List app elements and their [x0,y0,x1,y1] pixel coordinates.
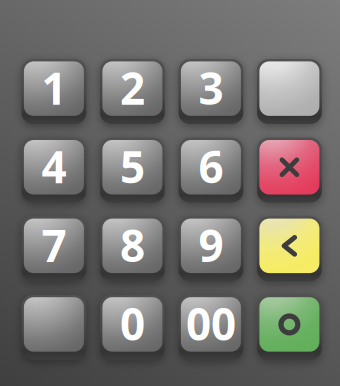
button[interactable]: 5 [100,138,165,203]
staticText: 3 [198,58,223,117]
staticText: 4 [41,137,66,195]
button[interactable] [257,295,322,360]
staticText: 5 [120,137,145,195]
button[interactable] [257,59,322,124]
staticText: 1 [41,58,66,117]
button[interactable]: 1 [21,59,86,124]
button[interactable]: 0 [100,295,165,360]
button[interactable]: 9 [178,216,243,281]
button[interactable] [257,216,322,281]
button[interactable]: 4 [21,138,86,203]
button[interactable]: 00 [178,295,243,360]
staticText: 0 [120,294,145,353]
button[interactable]: 3 [178,59,243,124]
button[interactable]: 7 [21,216,86,281]
staticText: 00 [186,294,236,353]
staticText: 9 [198,216,223,274]
button[interactable]: 8 [100,216,165,281]
button[interactable]: 6 [178,138,243,203]
button[interactable] [257,138,322,203]
button[interactable]: 2 [100,59,165,124]
staticText: 8 [120,216,145,274]
button[interactable] [21,295,86,360]
staticText: 2 [120,58,145,117]
staticText: 6 [198,137,223,195]
staticText: 7 [41,216,66,274]
